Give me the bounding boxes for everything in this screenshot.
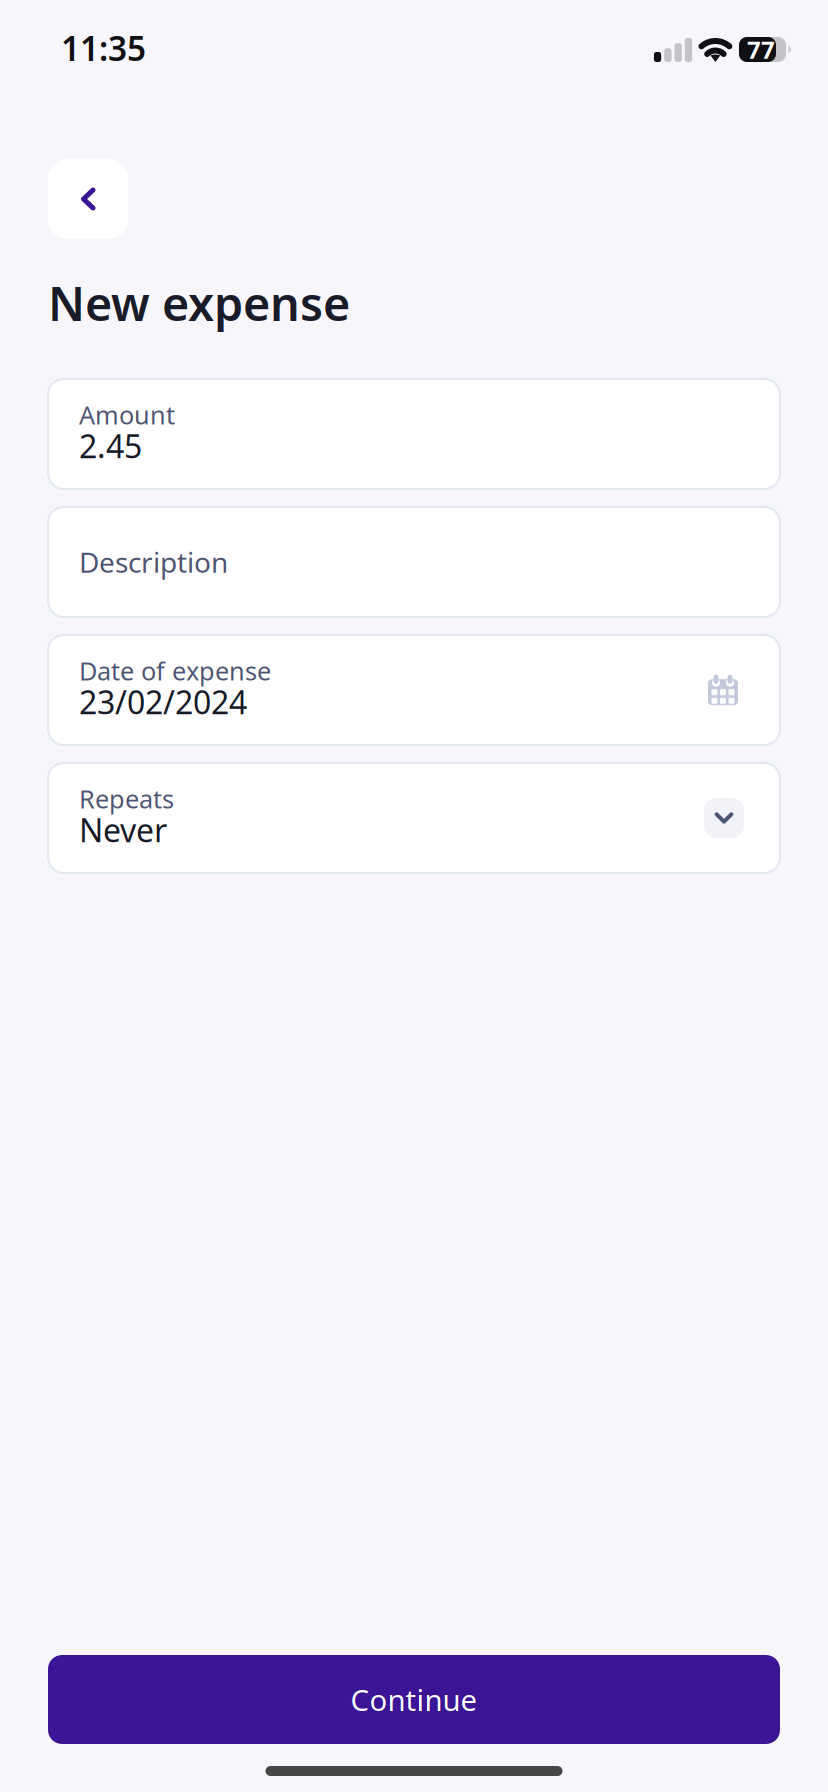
staticText: Description bbox=[79, 543, 228, 581]
staticText: 2.45 bbox=[79, 424, 142, 467]
staticText: Amount bbox=[79, 398, 175, 431]
staticText: Repeats bbox=[79, 782, 174, 815]
staticText: 11:35 bbox=[61, 26, 146, 70]
button[interactable]: Back bbox=[48, 159, 128, 239]
staticText: 77 bbox=[747, 34, 775, 65]
button[interactable]: Date of expense bbox=[48, 635, 780, 745]
staticText: 23/02/2024 bbox=[79, 680, 247, 723]
staticText: Never bbox=[79, 808, 167, 851]
button[interactable]: Continue bbox=[48, 1655, 780, 1744]
button[interactable]: Repeats bbox=[48, 763, 780, 873]
staticText: Date of expense bbox=[79, 654, 271, 687]
staticText: Continue bbox=[350, 1680, 477, 1719]
staticText: New expense bbox=[48, 272, 350, 334]
